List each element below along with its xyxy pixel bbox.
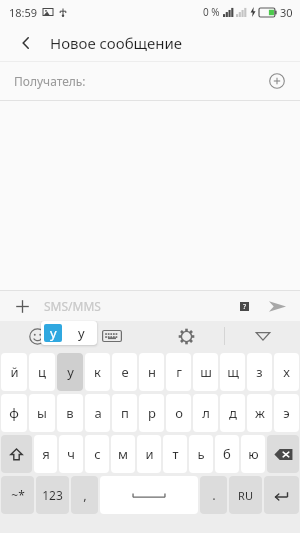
staticText: и xyxy=(145,445,154,463)
staticText: ? xyxy=(243,302,247,311)
button[interactable]: ы xyxy=(29,394,55,432)
button[interactable]: л xyxy=(193,394,218,432)
button[interactable]: а xyxy=(85,394,110,432)
button[interactable]: 123 xyxy=(36,476,69,514)
button[interactable]: Backspace xyxy=(267,435,299,473)
button[interactable]: я xyxy=(34,435,57,473)
staticText: г xyxy=(176,363,182,381)
button[interactable]: г xyxy=(166,353,191,391)
button[interactable]: е xyxy=(112,353,137,391)
staticText: в xyxy=(66,404,74,422)
button[interactable]: з xyxy=(247,353,272,391)
button[interactable]: ц xyxy=(29,353,55,391)
staticText: к xyxy=(94,363,101,381)
button[interactable]: б xyxy=(215,435,239,473)
button[interactable]: э xyxy=(274,394,299,432)
button[interactable]: , xyxy=(71,476,98,514)
staticText: й xyxy=(10,363,19,381)
button[interactable]: RU xyxy=(229,476,262,514)
staticText: е xyxy=(121,363,129,381)
staticText: SMS/MMS xyxy=(44,298,101,314)
button[interactable]: . xyxy=(200,476,227,514)
button[interactable]: м xyxy=(111,435,135,473)
staticText: ф xyxy=(9,404,19,422)
staticText: 18:59 xyxy=(9,5,38,20)
staticText: з xyxy=(256,363,263,381)
button[interactable]: р xyxy=(139,394,164,432)
button[interactable]: т xyxy=(163,435,187,473)
button[interactable]: ~* xyxy=(1,476,34,514)
staticText: у xyxy=(50,324,57,342)
staticText: Новое сообщение xyxy=(50,33,183,53)
staticText: ь xyxy=(197,445,205,463)
button[interactable]: щ xyxy=(220,353,245,391)
button[interactable]: Back xyxy=(14,31,38,55)
staticText: 30 xyxy=(280,5,293,20)
button[interactable]: ж xyxy=(247,394,272,432)
button[interactable]: у xyxy=(44,324,62,342)
staticText: 123 xyxy=(42,487,63,503)
staticText: Получатель: xyxy=(14,73,86,89)
staticText: э xyxy=(283,404,290,422)
staticText: ж xyxy=(255,404,265,422)
button[interactable]: к xyxy=(85,353,110,391)
staticText: м xyxy=(118,445,128,463)
staticText: ш xyxy=(200,363,212,381)
staticText: н xyxy=(148,363,156,381)
button[interactable]: х xyxy=(274,353,299,391)
staticText: ц xyxy=(38,363,46,381)
staticText: т xyxy=(172,445,179,463)
button[interactable]: Send xyxy=(264,293,290,319)
staticText: л xyxy=(202,404,210,422)
staticText: б xyxy=(223,445,231,463)
staticText: о xyxy=(175,404,183,422)
button[interactable]: Add recipient xyxy=(266,70,288,92)
staticText: х xyxy=(283,363,290,381)
staticText: ~* xyxy=(11,487,25,503)
button[interactable]: ф xyxy=(1,394,27,432)
staticText: а xyxy=(94,404,102,422)
button[interactable]: Space xyxy=(100,476,198,514)
button[interactable]: Unknown glyph xyxy=(236,298,252,314)
button[interactable]: с xyxy=(85,435,109,473)
button[interactable]: у xyxy=(65,321,97,345)
button[interactable]: Enter xyxy=(264,476,299,514)
button[interactable]: Settings xyxy=(149,321,224,351)
button[interactable]: н xyxy=(139,353,164,391)
button[interactable]: и xyxy=(137,435,161,473)
staticText: RU xyxy=(238,488,253,503)
staticText: , xyxy=(83,486,87,504)
button[interactable]: п xyxy=(112,394,137,432)
staticText: п xyxy=(121,404,129,422)
button[interactable]: Получатель: xyxy=(14,62,288,100)
button[interactable]: о xyxy=(166,394,191,432)
button[interactable]: Keyboard layout xyxy=(74,321,149,351)
staticText: ч xyxy=(67,445,75,463)
staticText: 0 % xyxy=(203,5,220,19)
staticText: с xyxy=(94,445,101,463)
button[interactable]: Attach xyxy=(10,294,34,318)
button[interactable]: ч xyxy=(59,435,83,473)
staticText: я xyxy=(42,445,50,463)
staticText: у xyxy=(67,363,74,381)
button[interactable]: ш xyxy=(193,353,218,391)
staticText: ы xyxy=(37,404,47,422)
staticText: ю xyxy=(248,445,259,463)
button[interactable]: в xyxy=(57,394,83,432)
button[interactable]: д xyxy=(220,394,245,432)
staticText: д xyxy=(229,404,237,422)
button[interactable]: ь xyxy=(189,435,213,473)
staticText: . xyxy=(212,486,216,504)
button[interactable]: ю xyxy=(241,435,265,473)
button[interactable]: Hide keyboard xyxy=(225,321,300,351)
button[interactable]: й xyxy=(1,353,27,391)
staticText: р xyxy=(148,404,156,422)
button[interactable]: у xyxy=(57,353,83,391)
staticText: щ xyxy=(227,363,239,381)
button[interactable]: Emoji xyxy=(0,321,74,351)
button[interactable]: Shift xyxy=(1,435,32,473)
staticText: у xyxy=(78,324,85,342)
